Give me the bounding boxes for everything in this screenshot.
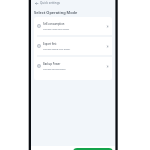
button[interactable]: Back — [34, 0, 61, 6]
button[interactable]: Self-consumption — [34, 17, 112, 35]
button[interactable]: Backup Power — [34, 57, 112, 75]
staticText: Export first — [43, 42, 57, 45]
staticText: Backup Power — [43, 62, 61, 65]
staticText: Prioritise selling solar power — [43, 47, 70, 50]
staticText: Self-consumption — [43, 22, 65, 25]
staticText: Prioritise storing power — [43, 67, 66, 70]
staticText: Prioritise using solar power — [43, 27, 70, 30]
staticText: Quick settings — [40, 1, 60, 5]
staticText: Select Operating Mode — [34, 10, 78, 15]
button[interactable] — [73, 148, 113, 150]
button[interactable]: Export first — [34, 37, 112, 55]
